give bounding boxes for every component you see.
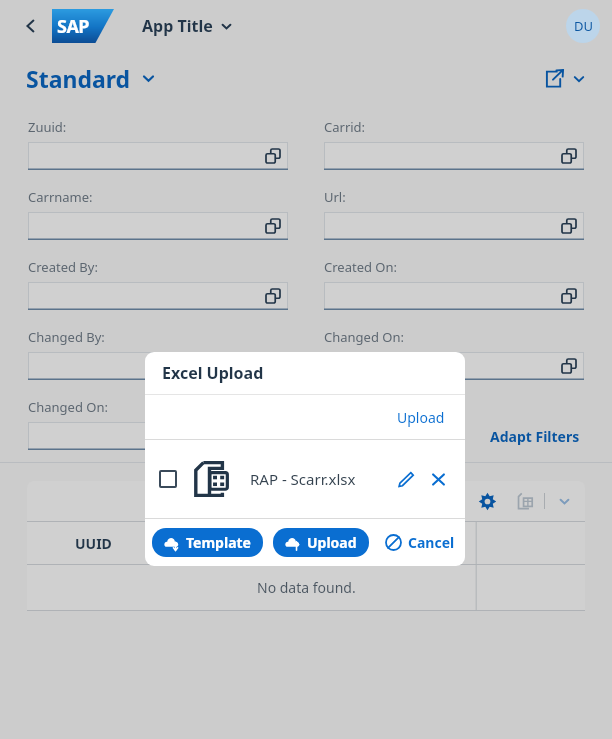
- staticText: Adapt Filters: [490, 427, 580, 446]
- button[interactable]: Edit: [393, 466, 419, 492]
- button[interactable]: Value help: [324, 352, 584, 380]
- button[interactable]: User profile: [566, 9, 600, 43]
- staticText: RAP - Scarr.xlsx: [250, 469, 356, 489]
- button[interactable]: Value help: [324, 212, 584, 240]
- button[interactable]: More export options: [553, 490, 575, 512]
- button[interactable]: Value help: [556, 353, 582, 379]
- button[interactable]: Upload: [393, 404, 449, 431]
- button[interactable]: Adapt Filters: [486, 423, 584, 450]
- button[interactable]: Value help: [28, 142, 288, 170]
- staticText: Upload: [397, 408, 445, 427]
- staticText: Changed By:: [28, 328, 105, 346]
- staticText: App Title: [142, 15, 213, 37]
- staticText: Created On:: [324, 258, 398, 276]
- button[interactable]: Value help: [260, 353, 286, 379]
- button[interactable]: Upload: [273, 528, 369, 557]
- staticText: Standard: [26, 63, 131, 94]
- button[interactable]: Back: [12, 9, 46, 43]
- staticText: Template: [186, 533, 251, 552]
- button[interactable]: Value help: [556, 283, 582, 309]
- button[interactable]: Value help: [324, 142, 584, 170]
- button[interactable]: Settings: [472, 486, 502, 516]
- staticText: Changed On:: [28, 398, 108, 416]
- button[interactable]: Value help: [260, 423, 286, 449]
- button[interactable]: Value help: [556, 143, 582, 169]
- staticText: DU: [574, 17, 593, 35]
- staticText: Carrname:: [28, 188, 93, 206]
- button[interactable]: Value help: [556, 213, 582, 239]
- staticText: Upload: [307, 533, 357, 552]
- staticText: SAP: [57, 14, 90, 39]
- button[interactable]: Remove: [425, 466, 451, 492]
- other: Export: [512, 488, 538, 514]
- button[interactable]: Value help: [28, 212, 288, 240]
- button[interactable]: Value help: [260, 213, 286, 239]
- staticText: Url:: [324, 188, 346, 206]
- staticText: Carrid:: [324, 118, 366, 136]
- staticText: Cancel: [408, 533, 455, 552]
- button[interactable]: Value help: [260, 283, 286, 309]
- staticText: Excel Upload: [162, 362, 264, 384]
- button[interactable]: Share: [545, 69, 586, 88]
- button[interactable]: Select file: [159, 470, 177, 488]
- staticText: Zuuid:: [28, 118, 67, 136]
- staticText: Created By:: [28, 258, 98, 276]
- button[interactable]: Value help: [28, 352, 288, 380]
- button[interactable]: App Title: [138, 11, 237, 41]
- button[interactable]: Standard: [26, 63, 156, 94]
- button[interactable]: Value help: [260, 143, 286, 169]
- staticText: Changed On:: [324, 328, 404, 346]
- button[interactable]: Value help: [28, 282, 288, 310]
- button[interactable]: Template: [152, 528, 263, 557]
- button[interactable]: Value help: [28, 422, 288, 450]
- button[interactable]: SAP: [52, 9, 114, 43]
- staticText: No data found.: [257, 578, 356, 597]
- button[interactable]: Cancel: [381, 528, 459, 557]
- button[interactable]: Value help: [324, 282, 584, 310]
- staticText: UUID: [75, 534, 112, 553]
